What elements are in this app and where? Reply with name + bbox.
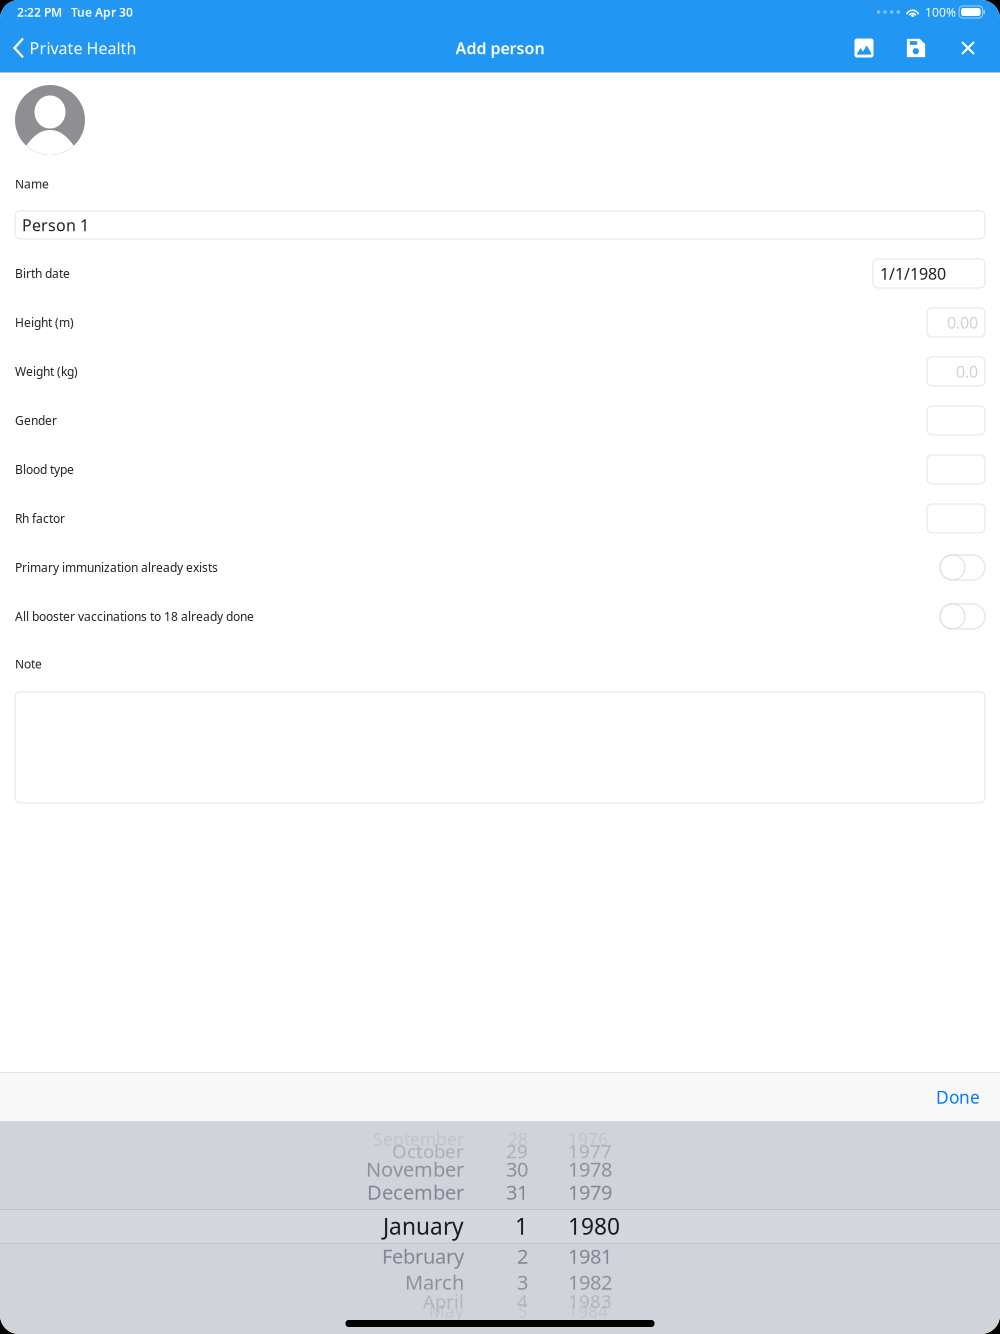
- staticText: 1977: [568, 1139, 612, 1163]
- staticText: Name: [15, 176, 49, 192]
- button[interactable]: Done: [916, 1073, 1000, 1121]
- staticText: October: [392, 1139, 464, 1163]
- staticText: 1984: [568, 1299, 608, 1322]
- staticText: 30: [506, 1156, 528, 1182]
- staticText: 3: [517, 1269, 528, 1295]
- staticText: November: [366, 1156, 464, 1182]
- staticText: Primary immunization already exists: [15, 559, 218, 575]
- staticText: 1976: [568, 1127, 608, 1150]
- staticText: Height (m): [15, 314, 74, 330]
- staticText: 1982: [568, 1269, 612, 1295]
- staticText: 28: [508, 1127, 528, 1150]
- staticText: Birth date: [15, 265, 70, 281]
- staticText: February: [382, 1243, 464, 1269]
- staticText: Weight (kg): [15, 363, 78, 379]
- staticText: 4: [517, 1289, 528, 1313]
- staticText: Private Health: [29, 37, 136, 59]
- staticText: 100%: [925, 4, 956, 20]
- staticText: 1981: [568, 1243, 612, 1269]
- staticText: December: [367, 1179, 464, 1205]
- staticText: Rh factor: [15, 510, 65, 526]
- staticText: Gender: [15, 412, 57, 428]
- staticText: 29: [506, 1139, 528, 1163]
- staticText: April: [423, 1289, 464, 1313]
- button[interactable]: Choose photo: [838, 24, 890, 72]
- button[interactable]: All booster vaccinations to 18 already d…: [940, 604, 985, 629]
- button[interactable]: Close: [942, 24, 994, 72]
- staticText: 0.00: [947, 312, 978, 333]
- staticText: 1983: [568, 1289, 612, 1313]
- staticText: 31: [506, 1179, 528, 1205]
- staticText: Add person: [455, 37, 544, 59]
- staticText: All booster vaccinations to 18 already d…: [15, 608, 254, 624]
- staticText: 2:22 PM Tue Apr 30: [17, 4, 133, 20]
- button[interactable]: Save: [890, 24, 942, 72]
- staticText: 1979: [568, 1179, 612, 1205]
- button[interactable]: Private Health: [0, 24, 148, 72]
- staticText: Blood type: [15, 461, 74, 477]
- staticText: March: [405, 1269, 464, 1295]
- staticText: September: [373, 1127, 464, 1150]
- staticText: 2: [517, 1243, 528, 1269]
- staticText: 1978: [568, 1156, 612, 1182]
- staticText: 1980: [568, 1211, 620, 1241]
- staticText: May: [429, 1299, 464, 1322]
- staticText: 1: [515, 1211, 528, 1241]
- staticText: Note: [15, 656, 42, 672]
- staticText: 1/1/1980: [880, 263, 946, 284]
- button[interactable]: 1/1/1980: [873, 259, 985, 288]
- staticText: 0.0: [956, 361, 978, 382]
- staticText: Person 1: [22, 214, 89, 235]
- staticText: Done: [936, 1085, 980, 1108]
- button[interactable]: Primary immunization already exists: [940, 555, 985, 580]
- staticText: January: [383, 1211, 464, 1241]
- staticText: 5: [518, 1299, 528, 1322]
